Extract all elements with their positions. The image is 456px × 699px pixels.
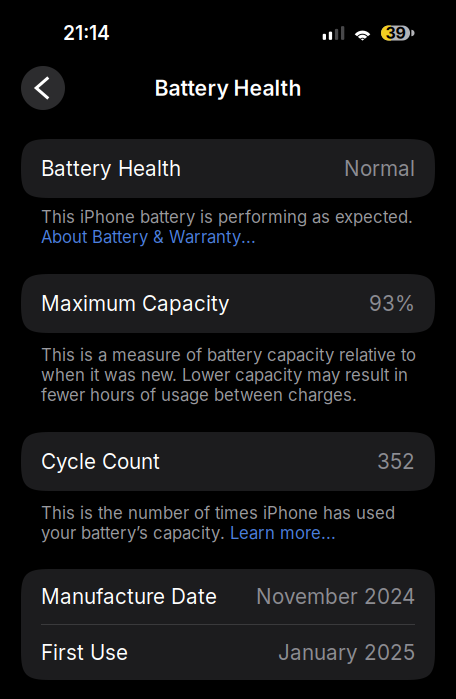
staticText: This iPhone battery is performing as exp…: [41, 207, 413, 227]
staticText: About Battery & Warranty...: [41, 227, 256, 247]
staticText: Normal: [344, 156, 415, 181]
button[interactable]: Manufacture Date: [21, 569, 435, 624]
staticText: First Use: [41, 640, 128, 665]
staticText: January 2025: [278, 640, 415, 665]
staticText: when it was new. Lower capacity may resu…: [41, 365, 408, 385]
staticText: your battery’s capacity.: [41, 523, 230, 543]
staticText: November 2024: [256, 584, 415, 609]
staticText: 39: [386, 23, 406, 43]
button[interactable]: Battery Health: [21, 139, 435, 198]
staticText: Maximum Capacity: [41, 291, 230, 316]
staticText: fewer hours of usage between charges.: [41, 385, 357, 405]
staticText: This is the number of times iPhone has u…: [41, 503, 395, 523]
staticText: 21:14: [63, 21, 110, 45]
staticText: Battery Health: [41, 156, 181, 181]
staticText: Manufacture Date: [41, 584, 217, 609]
button[interactable]: First Use: [21, 625, 435, 680]
staticText: Learn more...: [230, 523, 336, 543]
button[interactable]: Cycle Count: [21, 432, 435, 491]
staticText: Cycle Count: [41, 449, 160, 474]
staticText: Battery Health: [154, 75, 301, 101]
staticText: This is a measure of battery capacity re…: [41, 345, 416, 365]
staticText: 93%: [369, 291, 415, 316]
staticText: 352: [377, 449, 415, 474]
button[interactable]: Maximum Capacity: [21, 274, 435, 333]
button[interactable]: Back: [21, 66, 65, 110]
button[interactable]: Learn more...: [230, 523, 336, 543]
